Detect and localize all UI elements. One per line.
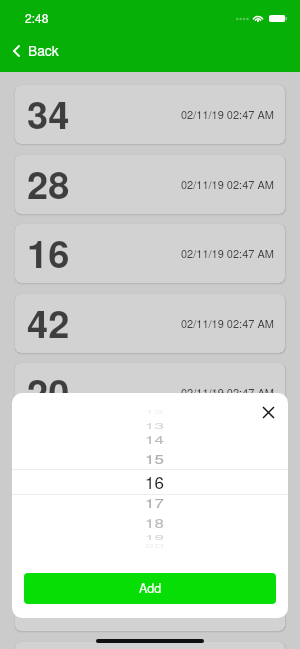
staticText: 20 [145,543,164,549]
staticText: 02/11/19 02:47 AM [181,176,274,192]
staticText: Back [28,40,59,60]
button[interactable]: 27 [15,503,285,562]
staticText: 02/11/19 02:47 AM [181,593,274,609]
staticText: 02/11/19 02:47 AM [181,384,274,400]
button[interactable]: 45 [15,642,285,649]
staticText: 28 [27,156,70,210]
staticText: 02/11/19 02:47 AM [181,245,274,261]
staticText: Add [139,579,162,597]
staticText: 19 [27,573,70,627]
staticText: 02/11/19 02:47 AM [181,454,274,470]
staticText: 2:48 [25,9,49,26]
staticText: 14 [145,430,164,445]
button[interactable]: Back [13,31,59,69]
button[interactable]: Add [24,573,276,604]
staticText: 16 [27,225,70,279]
button[interactable]: 20 [15,363,285,422]
button[interactable]: 16 [15,224,285,283]
staticText: 17 [145,494,164,510]
staticText: 15 [145,448,164,466]
button[interactable]: Close [255,399,282,426]
staticText: 02/11/19 02:47 AM [181,106,274,122]
button[interactable]: 31 [15,433,285,492]
button[interactable]: 34 [15,85,285,144]
staticText: 19 [145,532,164,540]
button[interactable]: 28 [15,155,285,214]
staticText: 42 [27,295,70,349]
staticText: 16 [145,469,164,491]
button[interactable]: 19 [15,572,285,631]
staticText: 02/11/19 02:47 AM [181,315,274,331]
staticText: 12 [145,408,164,414]
staticText: 13 [145,418,164,429]
staticText: 34 [27,86,70,140]
staticText: 18 [145,514,164,530]
staticText: 20 [27,364,70,418]
button[interactable]: 42 [15,294,285,353]
